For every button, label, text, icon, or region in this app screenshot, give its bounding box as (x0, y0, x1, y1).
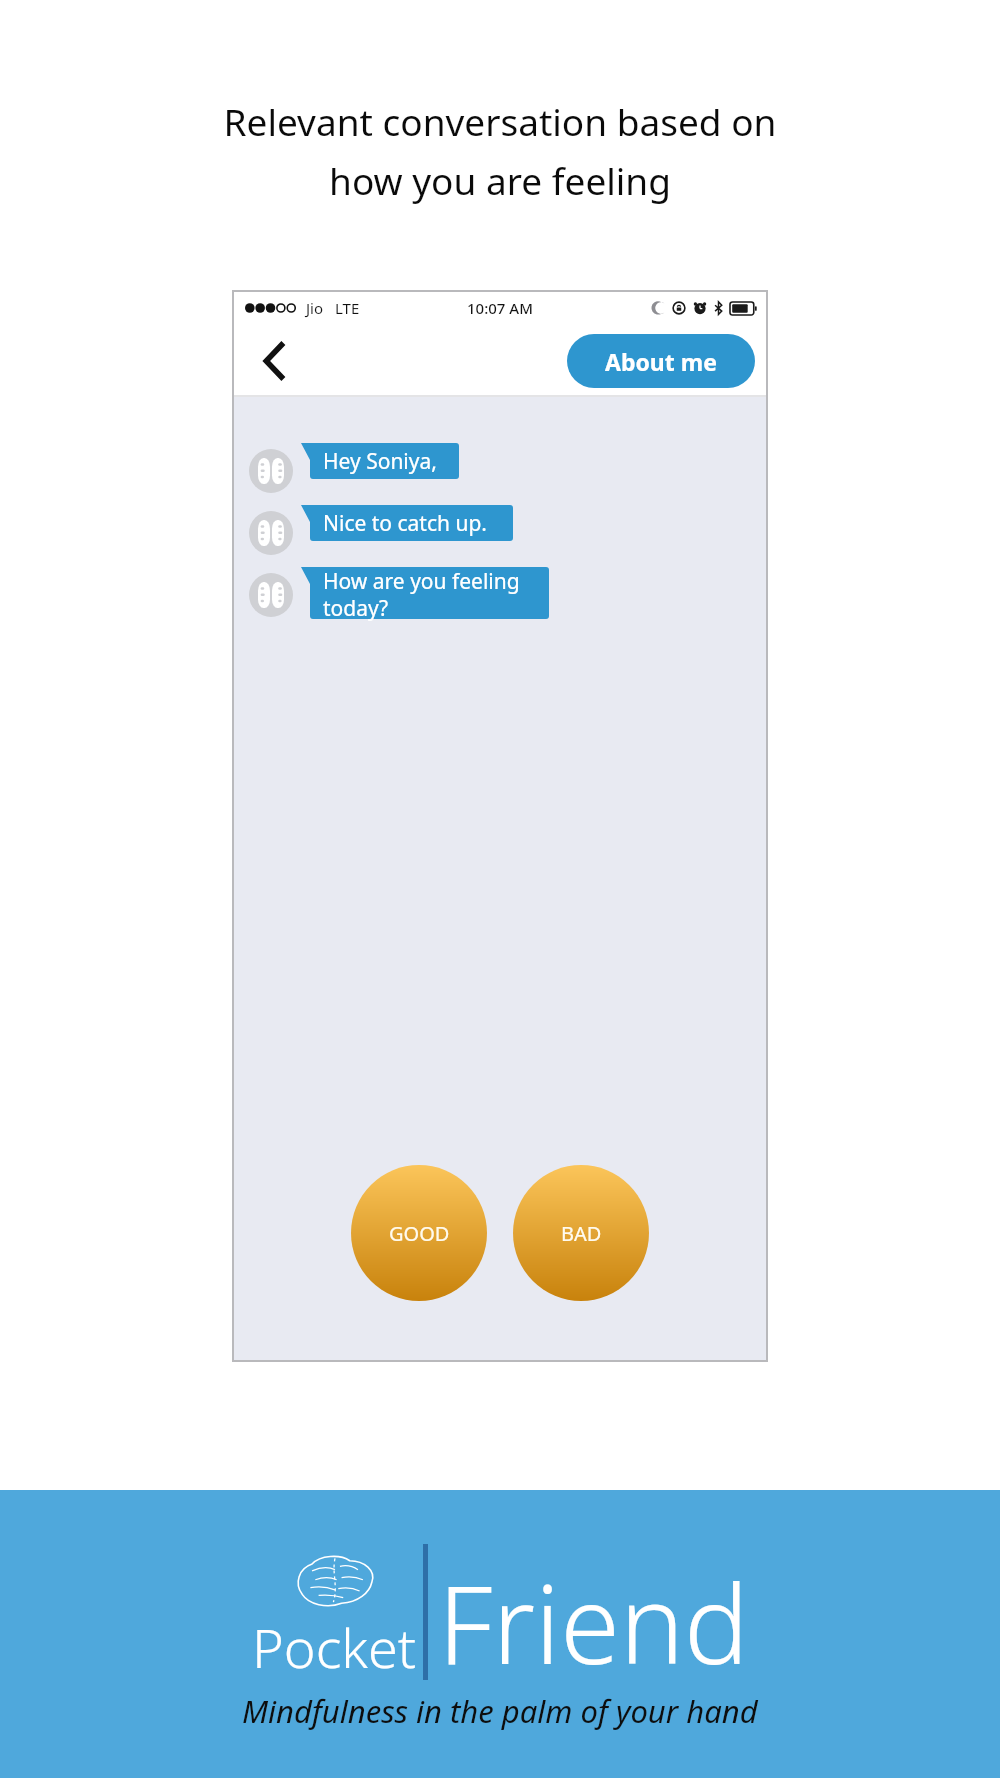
button[interactable]: BAD (513, 1165, 649, 1301)
staticText: About me (605, 346, 717, 377)
staticText: GOOD (389, 1220, 450, 1247)
staticText: How are you feeling today? (323, 567, 520, 622)
button[interactable]: About me (567, 334, 755, 388)
button[interactable]: How are you feeling today? (301, 567, 549, 622)
staticText: Nice to catch up. (323, 509, 487, 538)
button[interactable]: GOOD (351, 1165, 487, 1301)
staticText: 10:07 AM (467, 298, 533, 318)
staticText: Hey Soniya, (323, 447, 437, 476)
button[interactable]: Back (253, 339, 297, 383)
staticText: Pocket (252, 1610, 417, 1684)
staticText: BAD (561, 1220, 602, 1247)
staticText: Relevant conversation based on how you a… (24, 96, 976, 206)
staticText: LTE (335, 298, 360, 318)
staticText: Mindfulness in the palm of your hand (242, 1690, 758, 1732)
button[interactable]: Hey Soniya, (301, 443, 459, 479)
button[interactable]: Nice to catch up. (301, 505, 513, 541)
staticText: Jio (306, 298, 324, 318)
staticText: Friend (438, 1549, 749, 1696)
